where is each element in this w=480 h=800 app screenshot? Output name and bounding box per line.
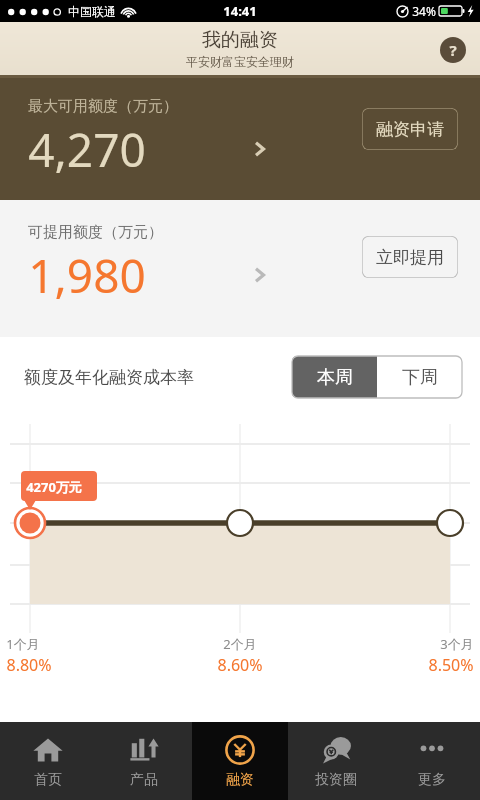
staticText: 中国联通 <box>68 4 116 19</box>
button[interactable]: 本周 <box>292 356 377 398</box>
staticText: 首页 <box>34 771 62 789</box>
staticText: 2个月 <box>223 635 257 653</box>
button[interactable]: 投资圈 <box>288 722 384 800</box>
staticText: 更多 <box>418 771 446 789</box>
staticText: 融资申请 <box>376 119 444 140</box>
staticText: 下周 <box>402 366 438 389</box>
staticText: 8.50% <box>428 654 474 676</box>
staticText: 可提用额度（万元） <box>28 223 163 242</box>
staticText: 额度及年化融资成本率 <box>24 367 194 388</box>
staticText: 34% <box>412 3 436 19</box>
staticText: 本周 <box>317 366 353 389</box>
button[interactable]: Help <box>440 37 466 63</box>
button[interactable]: 下周 <box>377 356 462 398</box>
staticText: 投资圈 <box>315 771 357 789</box>
button[interactable]: 立即提用 <box>362 236 458 278</box>
button[interactable]: 更多 <box>384 722 480 800</box>
staticText: 3个月 <box>440 635 474 653</box>
staticText: 最大可用额度（万元） <box>28 97 178 116</box>
button[interactable]: 融资 <box>192 722 288 800</box>
staticText: 8.80% <box>6 654 52 676</box>
staticText: 产品 <box>130 771 158 789</box>
staticText: ? <box>449 40 457 60</box>
staticText: 1,980 <box>28 244 146 307</box>
staticText: 立即提用 <box>376 247 444 268</box>
button[interactable]: 首页 <box>0 722 96 800</box>
button[interactable]: 最大可用额度（万元） <box>0 78 480 200</box>
staticText: 融资 <box>226 771 254 789</box>
staticText: 8.60% <box>217 654 263 676</box>
button[interactable]: 融资申请 <box>362 108 458 150</box>
staticText: 平安财富宝安全理财 <box>186 54 294 69</box>
staticText: 4270万元 <box>26 478 82 496</box>
button[interactable]: 产品 <box>96 722 192 800</box>
button[interactable]: 可提用额度（万元） <box>0 200 480 337</box>
staticText: 我的融资 <box>202 28 278 52</box>
staticText: 14:41 <box>223 2 257 20</box>
staticText: 1个月 <box>6 635 40 653</box>
staticText: 4,270 <box>28 118 146 181</box>
